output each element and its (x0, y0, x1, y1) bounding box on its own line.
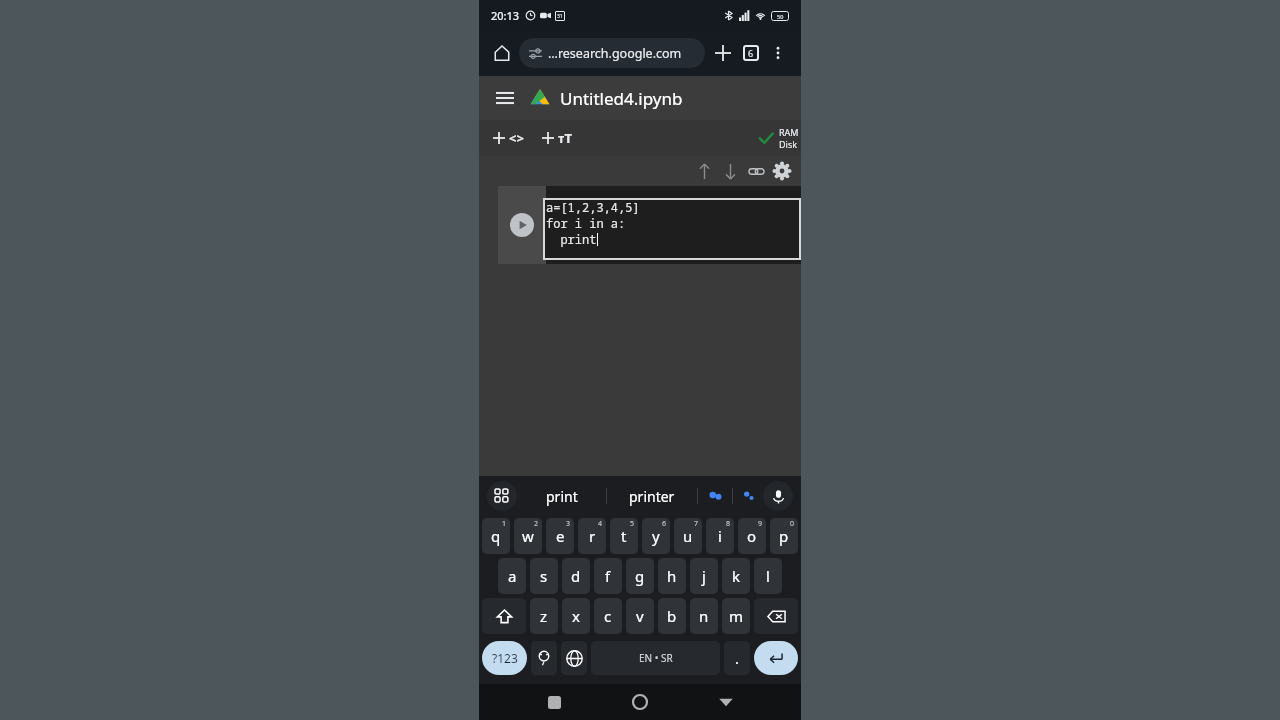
button[interactable]: k (722, 558, 750, 594)
staticText: 2 (534, 519, 539, 529)
staticText: n (699, 606, 709, 626)
button[interactable]: <> (491, 125, 526, 151)
button[interactable]: Menu (491, 84, 519, 112)
button[interactable]: n (690, 598, 718, 634)
button[interactable]: o (738, 518, 766, 554)
staticText: o (747, 526, 757, 546)
staticText: j (702, 566, 706, 586)
staticText: c (604, 606, 612, 626)
button[interactable]: Sticker (698, 476, 732, 516)
staticText: 6 (662, 519, 667, 529)
button[interactable]: Tabs (737, 39, 765, 67)
button[interactable]: e (546, 518, 574, 554)
button[interactable]: z (530, 598, 558, 634)
button[interactable]: f (594, 558, 622, 594)
staticText: print (546, 231, 597, 247)
staticText: for i in a: (546, 215, 626, 231)
staticText: Disk (779, 138, 798, 150)
button[interactable]: . (724, 641, 750, 675)
staticText: k (732, 566, 741, 586)
button[interactable]: j (690, 558, 718, 594)
button[interactable]: ᴛT (540, 125, 574, 151)
button[interactable]: GIF (733, 476, 763, 516)
button[interactable]: Move cell down (717, 158, 743, 184)
staticText: 31 (557, 13, 563, 20)
staticText: w (522, 526, 534, 546)
button[interactable]: Run cell (498, 186, 546, 264)
button[interactable]: Emoji (531, 641, 557, 675)
staticText: 20:13 (491, 8, 520, 23)
button[interactable]: t (610, 518, 638, 554)
staticText: 8 (726, 519, 731, 529)
staticText: d (571, 566, 581, 586)
button[interactable]: Cell settings (769, 158, 795, 184)
button[interactable]: …research.google.com (519, 38, 705, 68)
button[interactable]: l (754, 558, 782, 594)
button[interactable]: a=[1,2,3,4,5] (543, 198, 801, 260)
button[interactable]: EN • SR (591, 641, 720, 675)
button[interactable]: u (674, 518, 702, 554)
button[interactable]: Switch language (561, 641, 587, 675)
staticText: b (667, 606, 677, 626)
button[interactable]: Copy link (743, 158, 769, 184)
staticText: 0 (790, 519, 795, 529)
button[interactable]: x (562, 598, 590, 634)
button[interactable]: Move cell up (691, 158, 717, 184)
staticText: p (779, 526, 789, 546)
button[interactable]: Enter (754, 641, 798, 675)
button[interactable]: Back (709, 685, 743, 719)
button[interactable]: print (517, 476, 606, 516)
button[interactable]: q (482, 518, 510, 554)
button[interactable]: m (722, 598, 750, 634)
staticText: g (635, 566, 645, 586)
button[interactable]: Backspace (754, 598, 798, 634)
button[interactable]: Home (623, 685, 657, 719)
button[interactable]: p (770, 518, 798, 554)
button[interactable]: Voice input (763, 481, 793, 511)
button[interactable]: Clipboard (487, 481, 517, 511)
button[interactable]: v (626, 598, 654, 634)
staticText: 7 (694, 519, 699, 529)
button[interactable]: b (658, 598, 686, 634)
button[interactable]: s (530, 558, 558, 594)
button[interactable]: i (706, 518, 734, 554)
staticText: r (589, 526, 596, 546)
staticText: 1 (502, 519, 507, 529)
staticText: printer (629, 487, 675, 506)
button[interactable]: printer (607, 476, 697, 516)
button[interactable]: h (658, 558, 686, 594)
staticText: l (766, 566, 770, 586)
staticText: z (540, 606, 548, 626)
staticText: 4 (598, 519, 603, 529)
button[interactable]: g (626, 558, 654, 594)
staticText: print (546, 487, 578, 506)
staticText: 3 (566, 519, 571, 529)
button[interactable]: d (562, 558, 590, 594)
staticText: i (718, 526, 722, 546)
button[interactable]: More options (765, 40, 791, 66)
staticText: y (652, 526, 660, 546)
staticText: h (667, 566, 677, 586)
button[interactable]: Home (489, 40, 515, 66)
button[interactable]: Recents (537, 685, 571, 719)
staticText: 6 (748, 47, 754, 59)
button[interactable]: ?123 (482, 641, 527, 675)
staticText: x (572, 606, 580, 626)
button[interactable]: a (498, 558, 526, 594)
staticText: u (683, 526, 693, 546)
staticText: Untitled4.ipynb (560, 87, 683, 110)
staticText: ?123 (492, 650, 518, 666)
staticText: f (605, 566, 611, 586)
button[interactable]: c (594, 598, 622, 634)
button[interactable]: New tab (709, 39, 737, 67)
button[interactable]: w (514, 518, 542, 554)
staticText: e (556, 526, 565, 546)
staticText: a=[1,2,3,4,5] (546, 199, 640, 215)
staticText: 5 (630, 519, 635, 529)
button[interactable]: y (642, 518, 670, 554)
staticText: 9 (758, 519, 763, 529)
button[interactable]: r (578, 518, 606, 554)
staticText: q (491, 526, 501, 546)
staticText: RAM (779, 126, 799, 138)
button[interactable]: Shift (482, 598, 526, 634)
